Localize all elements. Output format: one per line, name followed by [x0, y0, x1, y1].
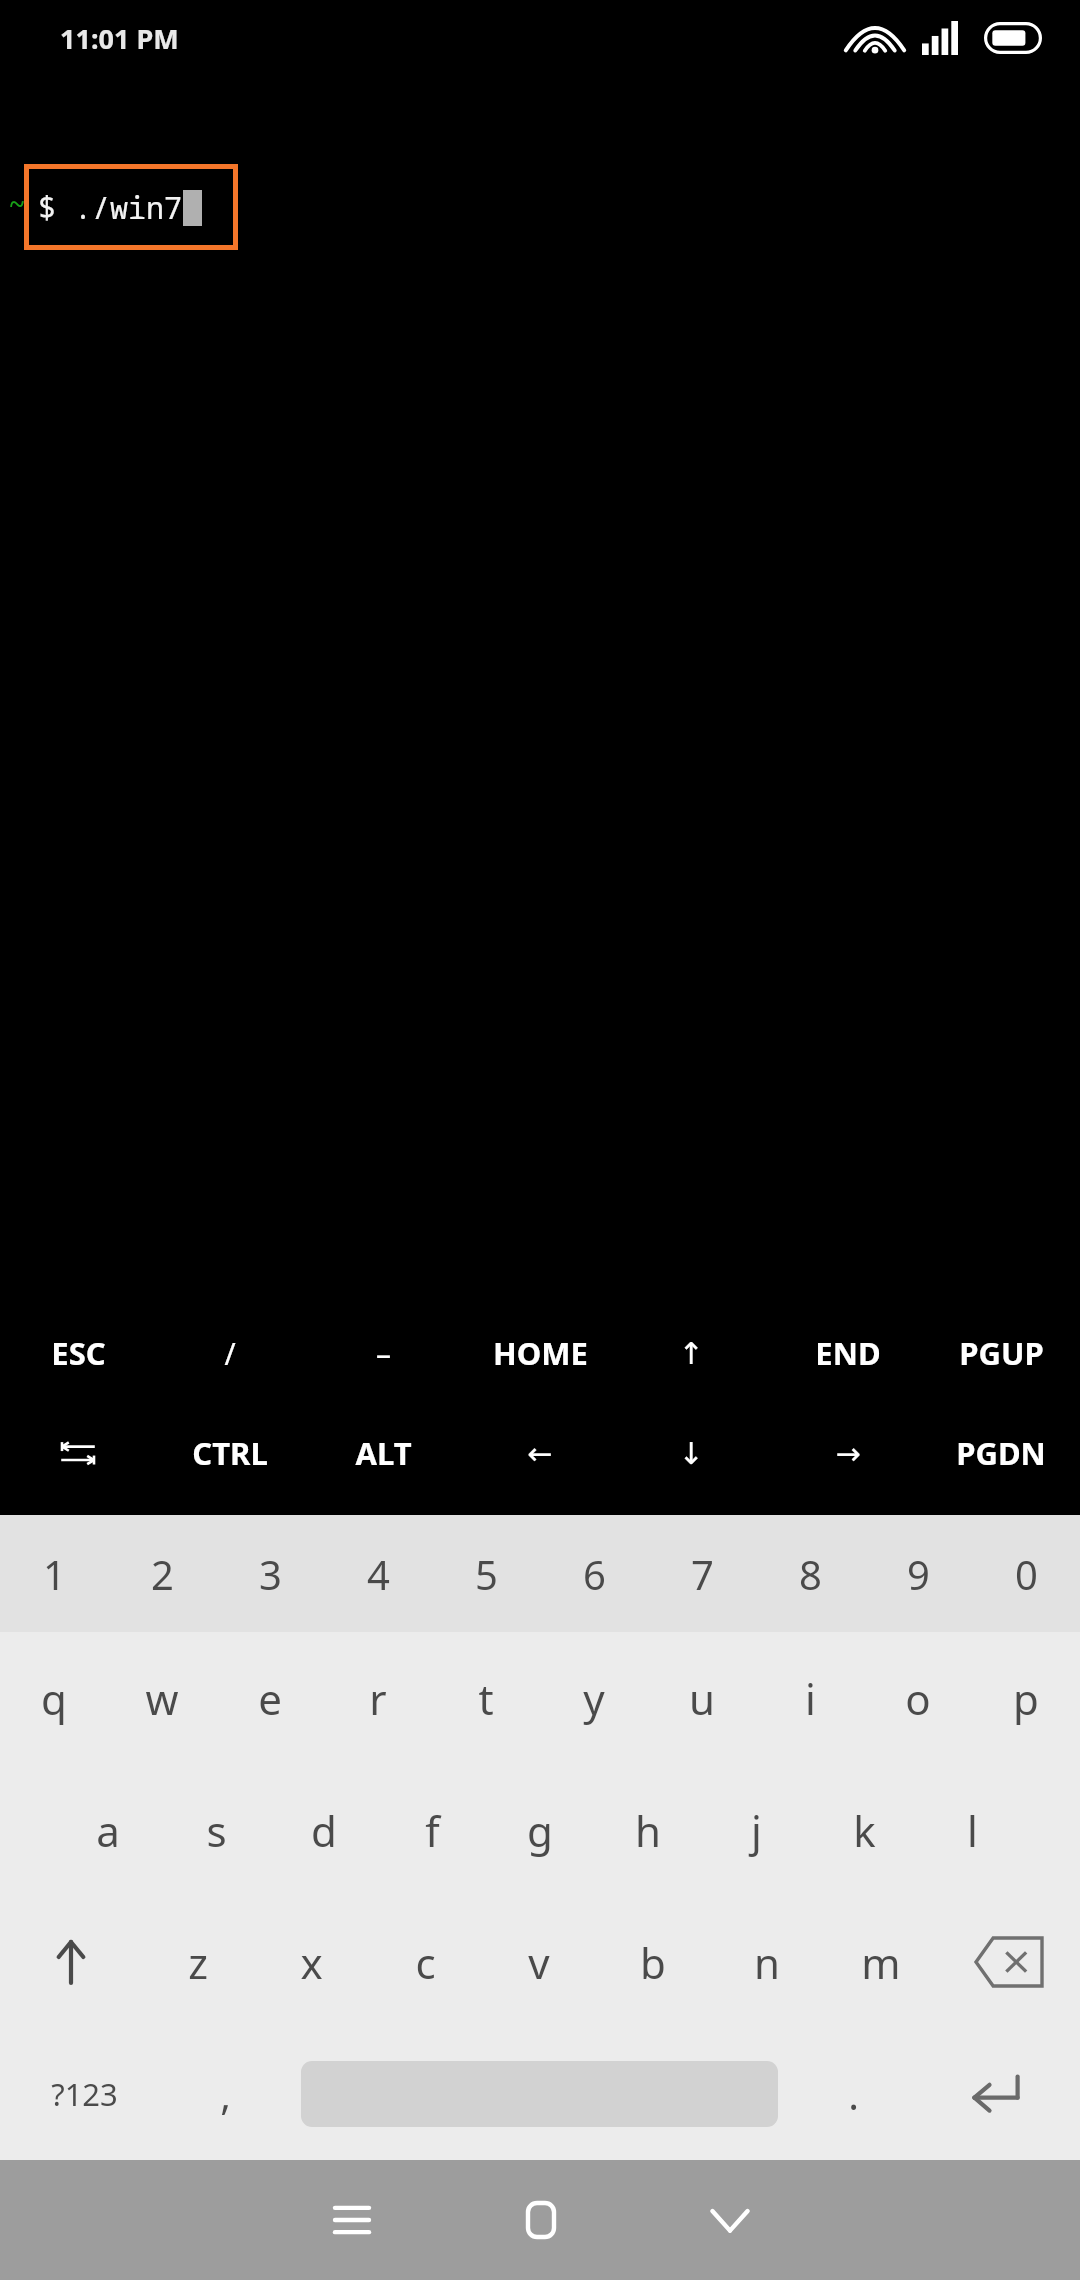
staticText: 4: [367, 1547, 390, 1601]
staticText: h: [635, 1802, 661, 1859]
button[interactable]: CTRL: [150, 1403, 310, 1503]
staticText: 0: [1015, 1547, 1038, 1601]
button[interactable]: ↑: [611, 1303, 771, 1403]
button[interactable]: ALT: [303, 1403, 463, 1503]
button[interactable]: 7: [648, 1515, 756, 1632]
button[interactable]: s: [162, 1764, 270, 1896]
staticText: r: [369, 1670, 387, 1727]
button[interactable]: w: [108, 1632, 216, 1764]
button[interactable]: Hide keyboard: [635, 2160, 824, 2280]
staticText: x: [300, 1934, 323, 1991]
button[interactable]: 3: [216, 1515, 324, 1632]
button[interactable]: 8: [756, 1515, 864, 1632]
staticText: d: [311, 1802, 337, 1859]
button[interactable]: 6: [540, 1515, 648, 1632]
button[interactable]: /: [150, 1303, 310, 1403]
button[interactable]: p: [972, 1632, 1080, 1764]
button[interactable]: 5: [432, 1515, 540, 1632]
button[interactable]: v: [482, 1896, 596, 2028]
button[interactable]: PGUP: [921, 1303, 1080, 1403]
button[interactable]: f: [378, 1764, 486, 1896]
button[interactable]: Backspace: [938, 1896, 1080, 2028]
staticText: j: [751, 1802, 762, 1859]
staticText: 9: [907, 1547, 930, 1601]
staticText: $ ./win7: [38, 187, 182, 228]
staticText: 8: [799, 1547, 822, 1601]
button[interactable]: $ ./win7: [24, 164, 238, 250]
staticText: ALT: [355, 1432, 412, 1474]
staticText: END: [815, 1332, 881, 1374]
staticText: n: [754, 1934, 780, 1991]
staticText: a: [96, 1802, 120, 1859]
button[interactable]: h: [594, 1764, 702, 1896]
staticText: e: [258, 1670, 282, 1727]
staticText: →: [835, 1436, 861, 1471]
staticText: f: [425, 1802, 440, 1859]
staticText: ↑: [678, 1336, 704, 1371]
staticText: 5: [475, 1547, 498, 1601]
staticText: /: [224, 1333, 236, 1374]
staticText: 11:01 PM: [60, 20, 179, 57]
staticText: ,: [220, 2067, 231, 2121]
button[interactable]: e: [216, 1632, 324, 1764]
staticText: m: [861, 1934, 901, 1991]
button[interactable]: ↓: [611, 1403, 771, 1503]
button[interactable]: u: [648, 1632, 756, 1764]
staticText: PGDN: [956, 1432, 1046, 1474]
button[interactable]: 9: [864, 1515, 972, 1632]
button[interactable]: c: [368, 1896, 482, 2028]
staticText: ?123: [51, 2073, 118, 2115]
button[interactable]: ESC: [0, 1303, 158, 1403]
button[interactable]: q: [0, 1632, 108, 1764]
button[interactable]: PGDN: [921, 1403, 1080, 1503]
button[interactable]: –: [303, 1303, 463, 1403]
staticText: ESC: [51, 1332, 106, 1374]
button[interactable]: 0: [972, 1515, 1080, 1632]
button[interactable]: 4: [324, 1515, 432, 1632]
button[interactable]: 1: [0, 1515, 108, 1632]
button[interactable]: d: [270, 1764, 378, 1896]
button[interactable]: l: [918, 1764, 1026, 1896]
button[interactable]: y: [540, 1632, 648, 1764]
button[interactable]: →: [768, 1403, 928, 1503]
staticText: ↓: [678, 1436, 704, 1471]
button[interactable]: ?123: [0, 2028, 168, 2160]
staticText: 6: [583, 1547, 606, 1601]
button[interactable]: HOME: [460, 1303, 620, 1403]
button[interactable]: a: [54, 1764, 162, 1896]
staticText: k: [853, 1802, 876, 1859]
staticText: y: [583, 1670, 605, 1727]
button[interactable]: x: [254, 1896, 368, 2028]
button[interactable]: Space: [283, 2028, 796, 2160]
staticText: 1: [43, 1547, 66, 1601]
button[interactable]: j: [702, 1764, 810, 1896]
button[interactable]: Enter: [911, 2028, 1080, 2160]
button[interactable]: Home: [446, 2160, 635, 2280]
staticText: t: [478, 1670, 494, 1727]
button[interactable]: Tab: [0, 1403, 158, 1503]
staticText: i: [805, 1670, 816, 1727]
staticText: HOME: [493, 1332, 588, 1374]
button[interactable]: k: [810, 1764, 918, 1896]
staticText: s: [206, 1802, 227, 1859]
button[interactable]: m: [824, 1896, 938, 2028]
button[interactable]: ,: [168, 2028, 283, 2160]
staticText: 3: [259, 1547, 282, 1601]
button[interactable]: Recents: [257, 2160, 446, 2280]
button[interactable]: END: [768, 1303, 928, 1403]
button[interactable]: ←: [460, 1403, 620, 1503]
button[interactable]: g: [486, 1764, 594, 1896]
staticText: b: [640, 1934, 666, 1991]
staticText: ←: [527, 1436, 553, 1471]
button[interactable]: z: [141, 1896, 254, 2028]
button[interactable]: b: [596, 1896, 710, 2028]
button[interactable]: i: [756, 1632, 864, 1764]
staticText: c: [415, 1934, 436, 1991]
button[interactable]: n: [710, 1896, 824, 2028]
button[interactable]: o: [864, 1632, 972, 1764]
button[interactable]: Shift: [0, 1896, 141, 2028]
button[interactable]: t: [432, 1632, 540, 1764]
button[interactable]: r: [324, 1632, 432, 1764]
button[interactable]: 2: [108, 1515, 216, 1632]
button[interactable]: .: [796, 2028, 911, 2160]
